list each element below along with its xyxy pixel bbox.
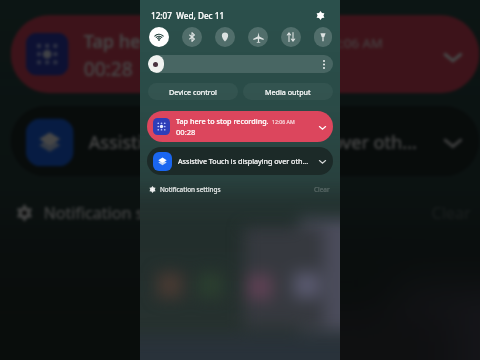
button[interactable]: Quick setting — [281, 27, 301, 47]
staticText: Tap here to stop recording. — [84, 28, 318, 53]
staticText: 00:28 — [176, 127, 196, 137]
staticText: 00:28 — [84, 55, 134, 81]
button[interactable]: Assistive Touch is displaying over oth..… — [147, 147, 333, 175]
staticText: Assistive Touch is displaying over oth..… — [178, 156, 316, 166]
button[interactable]: Settings — [313, 8, 327, 22]
button[interactable]: Expand — [436, 126, 467, 156]
staticText: Notification settings — [43, 202, 197, 224]
button[interactable]: Expand — [316, 121, 328, 133]
button[interactable]: Media output — [243, 83, 333, 100]
staticText: Clear — [314, 185, 330, 194]
staticText: Notification settings — [160, 185, 221, 194]
button[interactable]: Expand — [436, 40, 467, 70]
staticText: 12:06 AM — [272, 118, 295, 125]
button[interactable]: Quick setting — [149, 27, 169, 47]
staticText: Tap here to stop recording. — [176, 116, 269, 126]
button[interactable]: Expand — [316, 155, 328, 167]
button[interactable]: Tap here to stop recording. — [11, 15, 479, 93]
staticText: 12:07 Wed, Dec 11 — [151, 10, 225, 21]
button[interactable]: Notification settings — [149, 183, 330, 195]
button[interactable]: Notification settings — [16, 197, 472, 227]
staticText: Assistive Touch is displaying over oth..… — [89, 128, 437, 154]
button[interactable]: Quick setting — [215, 27, 235, 47]
button[interactable]: Device control — [148, 83, 238, 100]
staticText: Media output — [265, 87, 311, 97]
button[interactable]: Quick setting — [182, 27, 202, 47]
staticText: 12:06 AM — [326, 33, 384, 50]
staticText: Device control — [169, 87, 217, 97]
button[interactable]: Tap here to stop recording. — [147, 111, 333, 142]
button[interactable]: Brightness — [148, 55, 333, 73]
button[interactable]: Quick setting — [248, 27, 268, 47]
button[interactable]: Assistive Touch is displaying over oth..… — [11, 106, 479, 176]
button[interactable]: Quick setting — [314, 27, 332, 47]
